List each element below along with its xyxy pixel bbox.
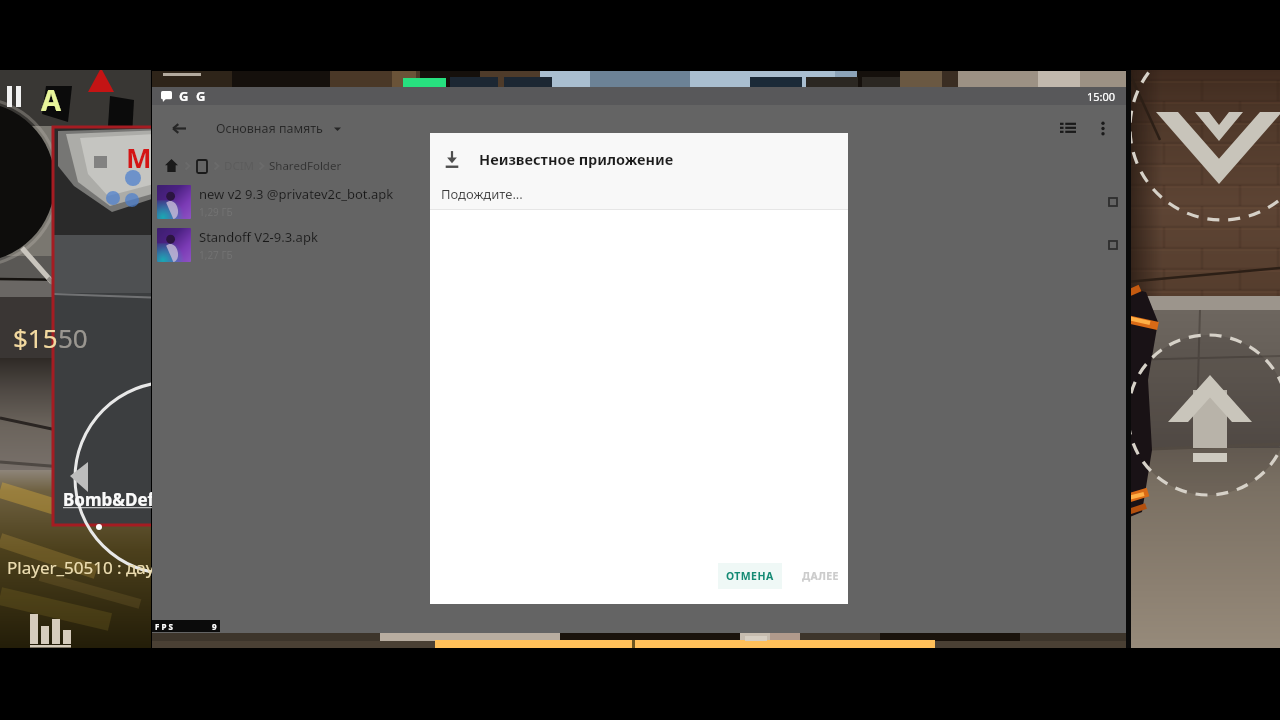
- staticText: ОТМЕНА: [726, 569, 774, 583]
- staticText: Player_50510 : даун: [7, 556, 165, 579]
- button[interactable]: SharedFolder: [269, 158, 342, 174]
- button[interactable]: Home: [163, 157, 180, 174]
- staticText: Подождите...: [441, 185, 523, 203]
- button[interactable]: Select file: [1102, 234, 1124, 256]
- staticText: 1,29 ГБ: [199, 205, 233, 219]
- staticText: A: [41, 80, 62, 119]
- staticText: ДАЛЕЕ: [802, 569, 839, 583]
- staticText: Bomb&Def: [63, 488, 155, 511]
- button[interactable]: new v2 9.3 @privatev2c_bot.apk: [152, 180, 1126, 223]
- staticText: 15:00: [1087, 89, 1116, 104]
- staticText: G: [196, 87, 206, 105]
- staticText: 50: [58, 320, 88, 355]
- staticText: Основная память: [216, 120, 323, 137]
- button[interactable]: Back: [166, 115, 192, 141]
- button[interactable]: Select file: [1102, 191, 1124, 213]
- staticText: G: [179, 87, 189, 105]
- staticText: $15: [13, 320, 58, 355]
- staticText: 1,27 ГБ: [199, 248, 233, 262]
- button[interactable]: Internal storage: [195, 158, 209, 174]
- staticText: new v2 9.3 @privatev2c_bot.apk: [199, 185, 394, 203]
- button[interactable]: List view: [1055, 115, 1081, 141]
- button[interactable]: More options: [1092, 117, 1114, 139]
- staticText: F P S: [155, 621, 173, 632]
- button[interactable]: ОТМЕНА: [718, 563, 782, 589]
- staticText: 9: [212, 621, 217, 632]
- button[interactable]: ДАЛЕЕ: [794, 563, 847, 589]
- staticText: Standoff V2-9.3.apk: [199, 228, 318, 246]
- staticText: Неизвестное приложение: [479, 149, 674, 169]
- staticText: SharedFolder: [269, 158, 342, 174]
- staticText: M: [126, 139, 152, 176]
- button[interactable]: Standoff V2-9.3.apk: [152, 223, 1126, 266]
